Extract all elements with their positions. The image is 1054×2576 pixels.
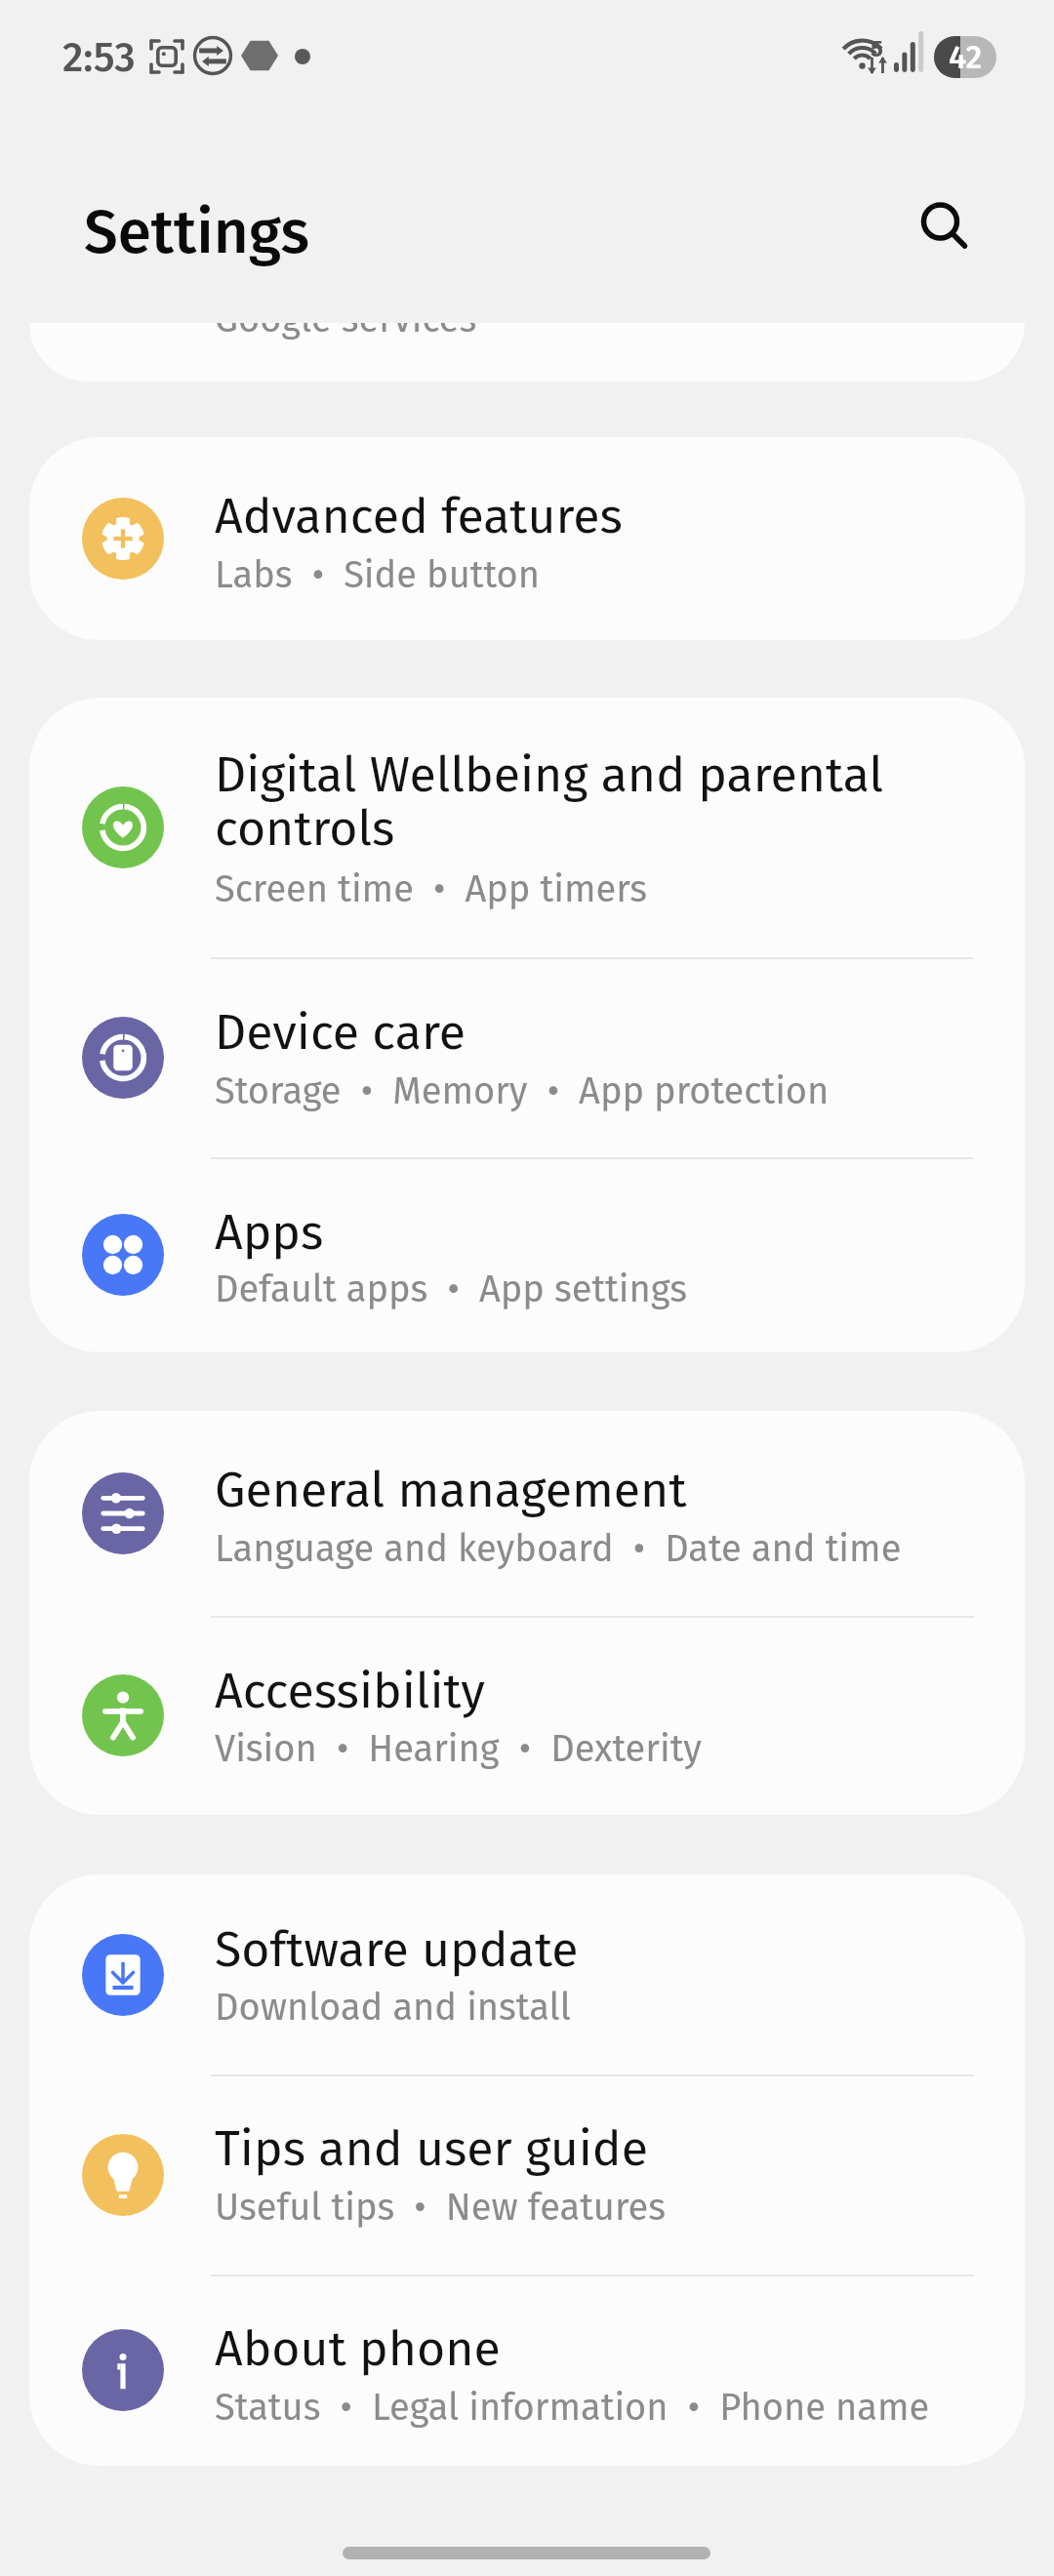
staticText: 5 [871, 35, 883, 63]
button[interactable]: Advanced features [29, 437, 1025, 640]
staticText: Status • Legal information • Phone name [215, 2385, 930, 2430]
button[interactable]: Accessibility [29, 1616, 1025, 1815]
staticText: Labs • Side button [215, 552, 541, 597]
button[interactable]: Apps [29, 1157, 1025, 1352]
staticText: Advanced features [215, 487, 966, 545]
staticText: Download and install [215, 1985, 571, 2030]
staticText: Apps [215, 1203, 966, 1262]
staticText: Digital Wellbeing and parental controls [215, 745, 966, 858]
staticText: About phone [215, 2319, 966, 2378]
staticText: Tips and user guide [215, 2119, 966, 2178]
staticText: Useful tips • New features [215, 2185, 666, 2230]
staticText: Device care [215, 1003, 966, 1062]
staticText: Screen time • App timers [215, 866, 648, 911]
staticText: Google services [215, 323, 477, 342]
staticText: 42 [949, 38, 983, 77]
staticText: Language and keyboard • Date and time [215, 1526, 902, 1571]
staticText: Software update [215, 1920, 966, 1979]
button[interactable]: Search [896, 178, 989, 270]
button[interactable]: Tips and user guide [29, 2074, 1025, 2274]
button[interactable]: Device care [29, 957, 1025, 1157]
staticText: 2:53 [62, 33, 136, 82]
button[interactable]: Digital Wellbeing and parental controls [29, 698, 1025, 957]
staticText: Default apps • App settings [215, 1267, 688, 1311]
button[interactable]: Software update [29, 1874, 1025, 2074]
staticText: Storage • Memory • App protection [215, 1068, 830, 1113]
staticText: General management [215, 1461, 966, 1519]
staticText: Settings [84, 196, 310, 268]
staticText: Accessibility [215, 1662, 966, 1720]
staticText: Vision • Hearing • Dexterity [215, 1726, 702, 1771]
button[interactable]: General management [29, 1411, 1025, 1616]
button[interactable]: Google services [29, 323, 1025, 382]
button[interactable]: About phone [29, 2274, 1025, 2466]
